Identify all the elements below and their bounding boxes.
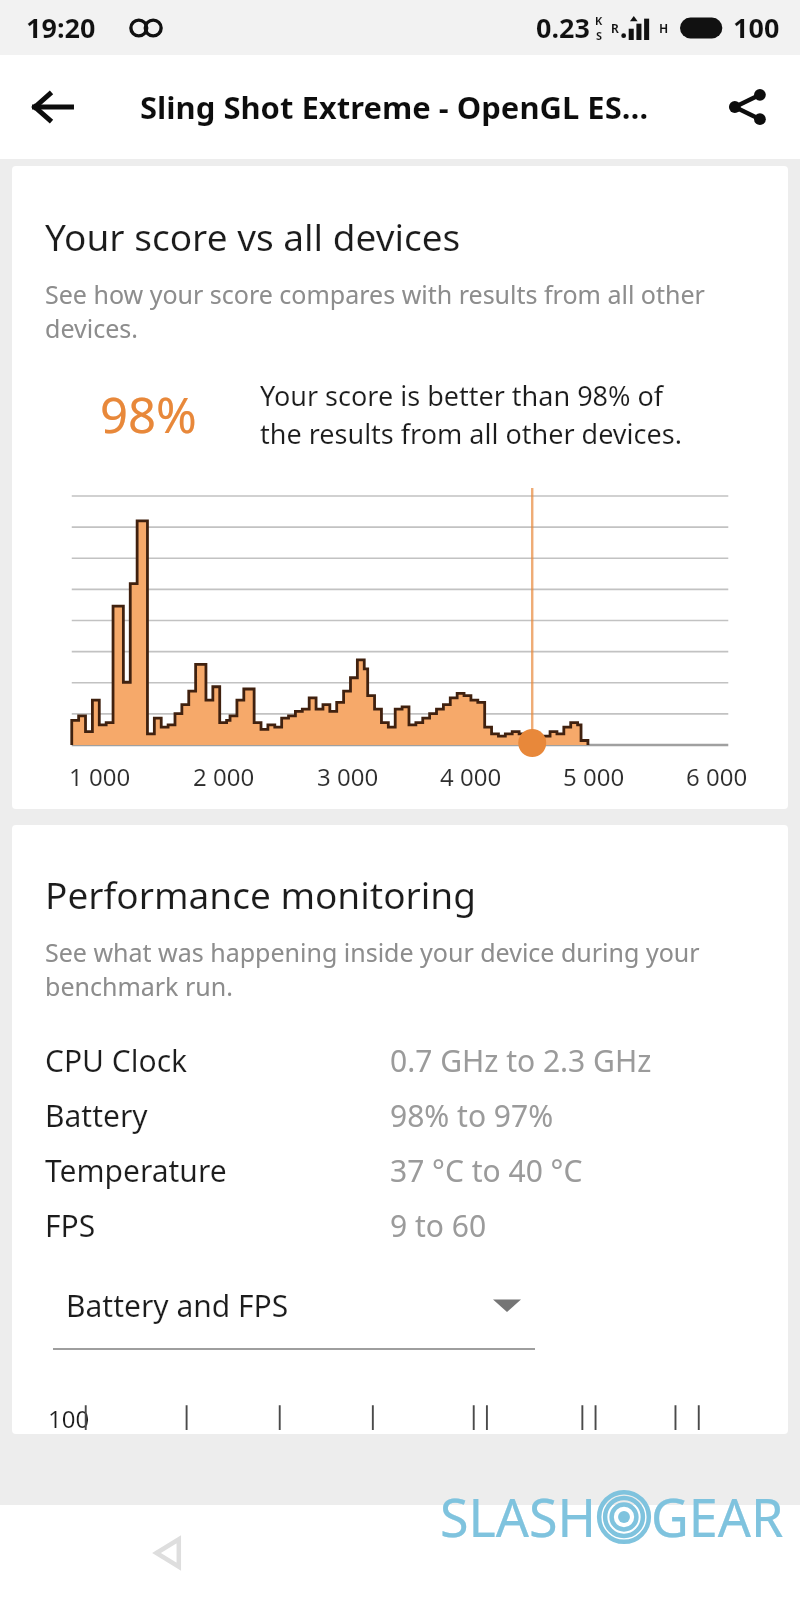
staticText: CPU Clock [45,1040,390,1081]
button[interactable]: Temperature [12,1143,788,1198]
staticText: 6 000 [686,760,748,793]
button[interactable]: Your score vs all devices [12,166,788,809]
button[interactable]: Battery and FPS [53,1285,535,1350]
staticText: FPS [45,1205,390,1246]
staticText: 5 000 [563,760,625,793]
staticText: R [611,20,619,36]
staticText: 0.7 GHz to 2.3 GHz [390,1040,652,1081]
staticText: See how your score compares with results… [45,277,705,345]
staticText: 2 000 [193,760,255,793]
staticText: 98% [100,381,250,448]
button[interactable]: Share [710,70,784,144]
staticText: 3 000 [317,760,379,793]
staticText: H [659,20,669,36]
button[interactable]: Performance monitoring [12,825,788,1434]
staticText: Your score is better than 98% of the res… [260,377,682,452]
staticText: S [596,28,603,43]
staticText: 37 °C to 40 °C [390,1150,583,1191]
staticText: 0.23 [536,9,590,46]
button[interactable]: FPS [12,1198,788,1253]
staticText: Your score vs all devices [45,211,461,261]
button[interactable]: CPU Clock [12,1033,788,1088]
staticText: GEAR [651,1481,784,1552]
staticText: 1 000 [69,760,131,793]
staticText: SLASH [440,1481,597,1552]
staticText: See what was happening inside your devic… [45,935,700,1003]
staticText: 100 [733,9,780,46]
staticText: 4 000 [440,760,502,793]
button[interactable]: Back [16,70,90,144]
button[interactable]: Battery [12,1088,788,1143]
staticText: Battery and FPS [66,1285,289,1326]
staticText: 9 to 60 [390,1205,487,1246]
staticText: Sling Shot Extreme - OpenGL ES… [140,86,649,128]
staticText: K [595,13,603,28]
button[interactable]: Back [128,1513,208,1593]
staticText: Battery [45,1095,390,1136]
staticText: 100 [48,1402,90,1430]
staticText: 19:20 [26,9,96,46]
staticText: 98% to 97% [390,1095,554,1136]
staticText: Performance monitoring [45,869,476,919]
staticText: Temperature [45,1150,390,1191]
